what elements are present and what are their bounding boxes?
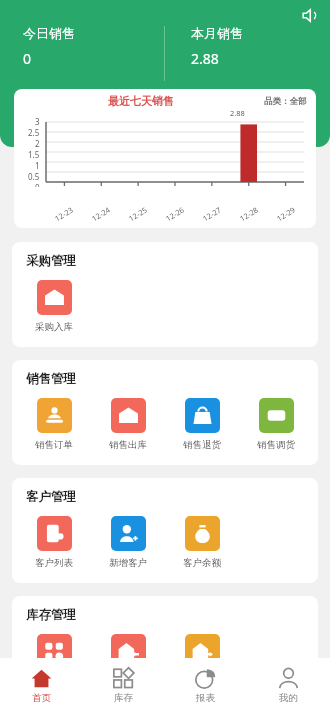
staticText: 12-25 [127, 204, 149, 224]
staticText: 销售退货 [183, 439, 221, 451]
staticText: 今日销售 [23, 25, 75, 41]
staticText: 销售订单 [35, 439, 73, 451]
button[interactable]: 客户列表 [17, 514, 91, 571]
staticText: 我的 [279, 692, 298, 704]
staticText: 12-26 [164, 204, 186, 224]
staticText: 销售管理 [26, 371, 76, 387]
button[interactable]: Sound [297, 3, 321, 27]
staticText: 0 [35, 182, 40, 187]
staticText: 12-27 [201, 204, 223, 224]
button[interactable]: 客户余额 [165, 514, 239, 571]
staticText: 12-28 [238, 204, 260, 224]
button[interactable]: 销售出库 [91, 396, 165, 453]
staticText: 1 [35, 160, 40, 171]
staticText: 销售调货 [257, 439, 295, 451]
staticText: 首页 [32, 692, 51, 704]
button[interactable]: 库存操作 [17, 632, 91, 658]
staticText: 2.88 [230, 108, 245, 118]
button[interactable]: 首页 [0, 658, 82, 714]
staticText: 库存 [114, 692, 133, 704]
staticText: 报表 [196, 692, 215, 704]
button[interactable]: 库存操作 [165, 632, 239, 658]
staticText: 客户余额 [183, 557, 221, 569]
staticText: 1.5 [28, 149, 40, 160]
button[interactable]: 采购入库 [17, 278, 91, 335]
button[interactable]: 销售退货 [165, 396, 239, 453]
button[interactable]: 新增客户 [91, 514, 165, 571]
staticText: 0 [23, 49, 32, 68]
staticText: 最近七天销售 [108, 94, 174, 108]
staticText: 2.88 [191, 49, 219, 68]
button[interactable]: 我的 [247, 658, 330, 714]
staticText: 品类：全部 [264, 96, 307, 107]
staticText: 新增客户 [109, 557, 147, 569]
button[interactable]: 库存操作 [91, 632, 165, 658]
staticText: 采购管理 [26, 253, 76, 269]
button[interactable]: 报表 [164, 658, 247, 714]
staticText: 12-29 [275, 204, 297, 224]
staticText: 12-24 [90, 204, 112, 224]
staticText: 采购入库 [35, 321, 73, 333]
staticText: 客户管理 [26, 489, 76, 505]
button[interactable]: 库存 [82, 658, 164, 714]
staticText: 本月销售 [191, 25, 243, 41]
button[interactable]: 销售调货 [239, 396, 313, 453]
staticText: 12-23 [53, 204, 75, 224]
staticText: 库存管理 [26, 607, 76, 623]
staticText: 3 [35, 116, 40, 127]
staticText: 2.5 [28, 127, 40, 138]
button[interactable]: 销售订单 [17, 396, 91, 453]
staticText: 销售出库 [109, 439, 147, 451]
staticText: 客户列表 [35, 557, 73, 569]
staticText: 2 [35, 138, 40, 149]
staticText: 0.5 [28, 171, 40, 182]
